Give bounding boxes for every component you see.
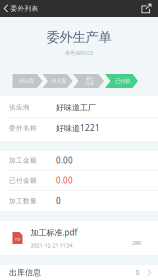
staticText: 出库信息 <box>9 268 41 277</box>
button[interactable]: PDF <box>0 221 158 255</box>
staticText: 单已完成 <box>86 76 94 86</box>
staticText: 已付金额 <box>9 176 37 185</box>
staticText: 0.00 <box>56 175 73 186</box>
staticText: 加工标准.pdf <box>30 227 77 238</box>
button[interactable]: Share <box>138 0 158 17</box>
staticText: 好味道1221 <box>56 123 100 133</box>
staticText: 28K <box>132 239 141 247</box>
staticText: 单号:W0103 <box>65 49 93 56</box>
staticText: 加工数量 <box>9 197 37 205</box>
staticText: 委外生产单 <box>46 29 111 45</box>
staticText: 已付款 <box>115 78 130 84</box>
staticText: 0 <box>135 268 139 277</box>
staticText: 委外名称 <box>9 124 37 132</box>
staticText: 待入库 <box>51 78 66 84</box>
button[interactable]: 出库信息 <box>0 265 158 280</box>
staticText: 2021-12-21 11:34 <box>30 242 72 249</box>
staticText: 0.00 <box>56 155 73 166</box>
staticText: 0 <box>56 196 61 206</box>
staticText: 加工金额 <box>9 156 37 165</box>
button[interactable]: 委外列表 <box>0 0 44 17</box>
staticText: 供应商 <box>9 103 30 112</box>
staticText: PDF <box>15 238 20 242</box>
staticText: 待出库 <box>19 78 34 84</box>
staticText: 好味道工厂 <box>56 103 96 112</box>
staticText: 委外列表 <box>10 4 38 13</box>
